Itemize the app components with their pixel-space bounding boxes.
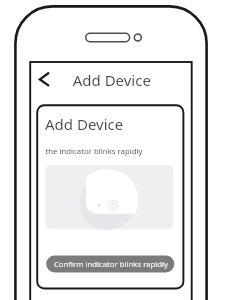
button[interactable]: Back <box>33 69 55 91</box>
button[interactable] <box>46 255 174 273</box>
